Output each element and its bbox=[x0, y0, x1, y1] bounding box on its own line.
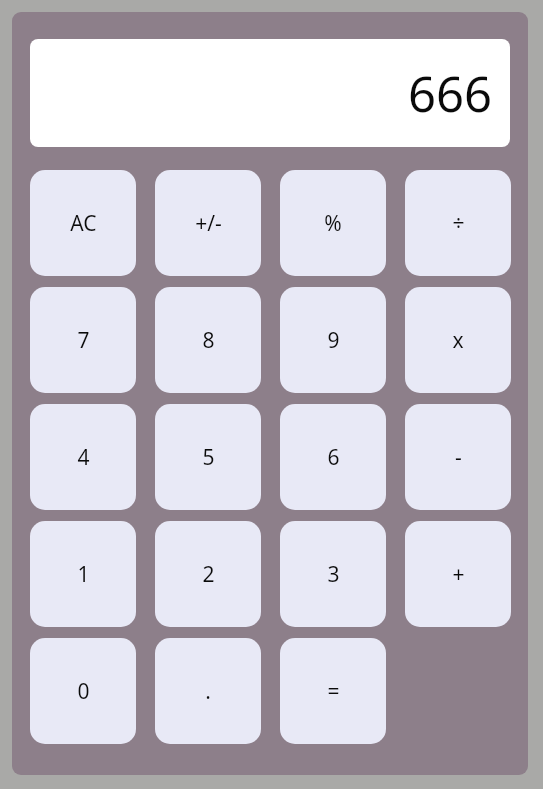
staticText: 6 bbox=[327, 443, 340, 472]
staticText: 9 bbox=[327, 326, 340, 355]
staticText: AC bbox=[70, 209, 97, 238]
button[interactable]: + bbox=[405, 521, 511, 627]
button[interactable]: 666 bbox=[30, 39, 510, 147]
button[interactable]: 9 bbox=[280, 287, 386, 393]
button[interactable]: 6 bbox=[280, 404, 386, 510]
staticText: 666 bbox=[408, 60, 493, 127]
button[interactable]: 7 bbox=[30, 287, 136, 393]
button[interactable]: - bbox=[405, 404, 511, 510]
staticText: 7 bbox=[77, 326, 90, 355]
staticText: ÷ bbox=[452, 209, 465, 238]
button[interactable]: 4 bbox=[30, 404, 136, 510]
staticText: - bbox=[455, 443, 462, 472]
button[interactable]: +/- bbox=[155, 170, 261, 276]
staticText: 2 bbox=[202, 560, 215, 589]
staticText: 3 bbox=[327, 560, 340, 589]
staticText: 5 bbox=[202, 443, 215, 472]
staticText: 4 bbox=[77, 443, 90, 472]
staticText: 0 bbox=[77, 677, 90, 706]
staticText: = bbox=[327, 677, 340, 706]
staticText: 1 bbox=[77, 560, 90, 589]
staticText: % bbox=[324, 209, 342, 238]
button[interactable]: % bbox=[280, 170, 386, 276]
staticText: + bbox=[452, 560, 465, 589]
staticText: +/- bbox=[195, 209, 222, 238]
button[interactable]: x bbox=[405, 287, 511, 393]
button[interactable]: = bbox=[280, 638, 386, 744]
button[interactable]: 8 bbox=[155, 287, 261, 393]
button[interactable]: AC bbox=[30, 170, 136, 276]
staticText: 8 bbox=[202, 326, 215, 355]
button[interactable]: . bbox=[155, 638, 261, 744]
button[interactable]: 0 bbox=[30, 638, 136, 744]
button[interactable]: 3 bbox=[280, 521, 386, 627]
button[interactable]: ÷ bbox=[405, 170, 511, 276]
staticText: x bbox=[452, 326, 464, 355]
button[interactable]: 2 bbox=[155, 521, 261, 627]
button[interactable]: 5 bbox=[155, 404, 261, 510]
button[interactable]: 1 bbox=[30, 521, 136, 627]
staticText: . bbox=[205, 677, 211, 706]
